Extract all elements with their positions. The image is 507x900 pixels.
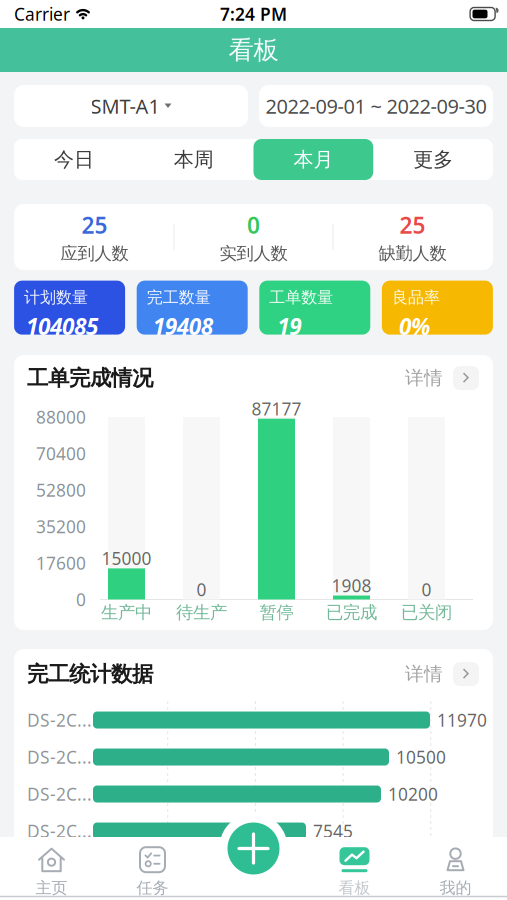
- staticText: 详情: [405, 663, 443, 685]
- staticText: 25: [81, 210, 107, 240]
- staticText: 主页: [35, 878, 67, 898]
- staticText: 暂停: [259, 602, 293, 623]
- staticText: 19408: [153, 311, 213, 341]
- staticText: 良品率: [392, 288, 440, 307]
- staticText: DS-2C...: [27, 819, 92, 842]
- staticText: 缺勤人数: [378, 243, 446, 264]
- button[interactable]: 任务: [102, 844, 203, 900]
- staticText: 本月: [293, 147, 333, 172]
- staticText: 实到人数: [219, 243, 287, 264]
- staticText: 10500: [396, 745, 446, 768]
- staticText: 看板: [228, 34, 278, 65]
- staticText: 生产中: [101, 602, 152, 623]
- staticText: 87177: [251, 397, 301, 420]
- staticText: 详情: [405, 367, 443, 389]
- button[interactable]: 看板: [304, 844, 405, 900]
- staticText: 今日: [54, 147, 94, 172]
- staticText: 1908: [331, 574, 371, 597]
- staticText: 88000: [36, 405, 86, 428]
- staticText: 工单完成情况: [27, 365, 153, 391]
- staticText: 已完成: [326, 602, 377, 623]
- staticText: 7545: [313, 819, 353, 842]
- staticText: 11970: [437, 708, 487, 731]
- staticText: DS-2C...: [27, 708, 92, 731]
- button[interactable]: 主页: [1, 844, 102, 900]
- staticText: SMT-A1: [90, 93, 159, 119]
- staticText: 17600: [36, 551, 86, 574]
- staticText: 7:24 PM: [220, 2, 287, 25]
- button[interactable]: 本周: [134, 139, 254, 180]
- staticText: 15000: [101, 547, 151, 570]
- staticText: 本周: [174, 147, 214, 172]
- button[interactable]: SMT-A1: [14, 85, 248, 127]
- staticText: 35200: [36, 515, 86, 538]
- staticText: 52800: [36, 478, 86, 501]
- staticText: 完工数量: [147, 288, 211, 307]
- staticText: 已关闭: [401, 602, 452, 623]
- staticText: 0: [421, 578, 431, 601]
- staticText: 2022-09-01 ~ 2022-09-30: [265, 93, 486, 119]
- staticText: 工单数量: [269, 288, 333, 307]
- staticText: 计划数量: [24, 288, 88, 307]
- staticText: 应到人数: [60, 243, 128, 264]
- staticText: 10200: [388, 782, 438, 805]
- button[interactable]: 详情: [405, 366, 479, 390]
- staticText: DS-2C...: [27, 782, 92, 805]
- staticText: 0: [247, 210, 260, 240]
- button[interactable]: 我的: [405, 844, 506, 900]
- staticText: 19: [277, 311, 301, 341]
- staticText: Carrier: [14, 2, 70, 25]
- staticText: DS-2C...: [27, 745, 92, 768]
- staticText: 0: [196, 578, 206, 601]
- button[interactable]: 详情: [405, 662, 479, 686]
- staticText: 我的: [439, 878, 471, 898]
- button[interactable]: 今日: [14, 139, 134, 180]
- button[interactable]: 更多: [373, 139, 493, 180]
- staticText: 完工统计数据: [27, 661, 153, 687]
- button[interactable]: 2022-09-01 ~ 2022-09-30: [259, 85, 493, 127]
- staticText: 更多: [413, 147, 453, 172]
- staticText: 0: [76, 588, 86, 611]
- button[interactable]: Add: [224, 819, 282, 877]
- staticText: 0%: [399, 311, 430, 341]
- staticText: 任务: [136, 878, 168, 898]
- staticText: 看板: [338, 878, 370, 898]
- staticText: 104085: [26, 311, 98, 341]
- staticText: 70400: [36, 442, 86, 465]
- staticText: 25: [399, 210, 425, 240]
- staticText: 待生产: [176, 602, 227, 623]
- button[interactable]: 本月: [253, 139, 373, 180]
